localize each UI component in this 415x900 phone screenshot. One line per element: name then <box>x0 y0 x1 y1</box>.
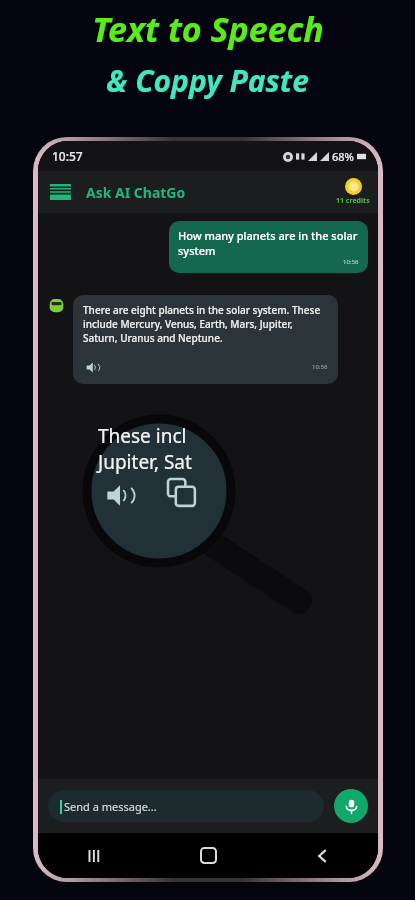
staticText: 10:56 <box>343 258 359 266</box>
button[interactable]: 11 credits <box>336 178 370 206</box>
staticText: 10:56 <box>312 363 328 371</box>
button[interactable]: Recents <box>38 833 152 878</box>
button[interactable]: Home <box>152 833 265 878</box>
button[interactable]: Menu <box>48 183 72 201</box>
staticText: 10:57 <box>52 148 83 164</box>
staticText: There are eight planets in the solar sys… <box>83 303 328 345</box>
button[interactable]: How many planets are in the solar system <box>169 221 368 273</box>
button[interactable]: Send a message... <box>48 790 324 822</box>
button[interactable]: Speak <box>83 358 101 376</box>
staticText: & Coppy Paste <box>106 60 309 101</box>
button[interactable]: There are eight planets in the solar sys… <box>73 295 338 384</box>
staticText: Text to Speech <box>92 6 324 52</box>
button[interactable]: Ask AI ChatGo <box>86 183 186 202</box>
button[interactable]: Back <box>265 833 378 878</box>
staticText: These incl <box>98 423 187 449</box>
staticText: How many planets are in the solar system <box>178 228 359 258</box>
staticText: 11 credits <box>336 196 370 206</box>
staticText: Send a message... <box>64 799 157 814</box>
staticText: 68% <box>332 149 354 164</box>
button[interactable]: Voice input <box>334 789 368 823</box>
button[interactable]: Copy <box>164 475 200 511</box>
button[interactable]: Speak <box>102 478 136 512</box>
staticText: Jupiter, Sat <box>98 449 192 475</box>
